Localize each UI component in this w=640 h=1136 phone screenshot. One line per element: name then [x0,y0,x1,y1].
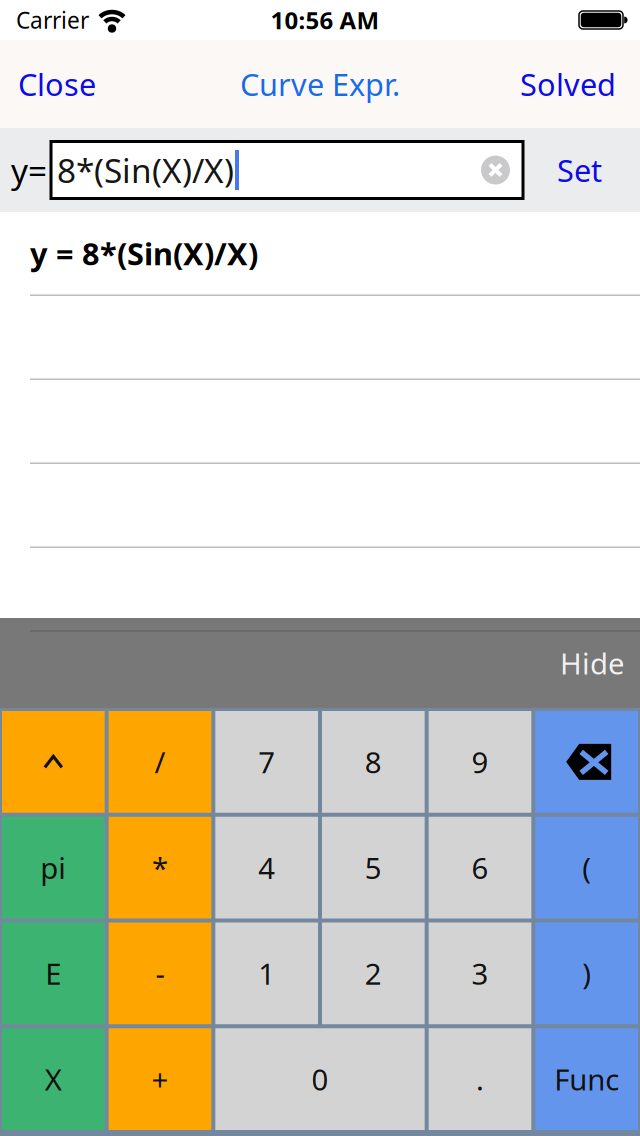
button[interactable]: Curve Expr. [240,64,400,104]
staticText: E [45,954,61,993]
staticText: Carrier [16,5,89,35]
button[interactable]: Solved [520,64,616,104]
button[interactable]: 8 [322,711,425,813]
staticText: 9 [471,742,488,781]
button[interactable]: 6 [429,817,531,919]
staticText: 4 [258,848,275,887]
staticText: Solved [520,64,616,104]
staticText: y= [11,148,47,192]
staticText: * [152,848,168,887]
button[interactable]: - [109,922,211,1024]
staticText: Set [557,150,602,190]
staticText: Curve Expr. [240,64,400,104]
button[interactable]: X [2,1028,105,1130]
staticText: 0 [311,1060,328,1099]
staticText: - [155,954,164,993]
staticText: 1 [258,954,275,993]
button[interactable]: E [2,922,105,1024]
staticText: 7 [258,742,275,781]
button[interactable]: 3 [429,922,531,1024]
staticText: 6 [471,848,488,887]
button[interactable]: 4 [215,817,318,919]
button[interactable] [2,711,105,813]
button[interactable]: Close [18,64,96,104]
button[interactable]: Set [523,128,636,212]
staticText: . [476,1060,484,1099]
staticText: ( [582,848,591,887]
staticText: / [154,742,165,781]
staticText: 8 [365,742,382,781]
button[interactable] [535,711,638,813]
button[interactable]: 8*(Sin(X)/X) [51,141,523,198]
button[interactable]: 7 [215,711,318,813]
button[interactable]: ) [535,922,638,1024]
staticText: Close [18,64,96,104]
button[interactable]: / [109,711,211,813]
staticText: Func [554,1060,619,1099]
button[interactable]: y = 8*(Sin(X)/X) [0,212,640,294]
staticText: 10:56 AM [270,4,379,36]
staticText: + [151,1060,168,1099]
staticText: pi [40,848,66,887]
button[interactable]: 2 [322,922,425,1024]
staticText: 2 [365,954,382,993]
button[interactable]: 9 [429,711,531,813]
button[interactable] [481,155,510,184]
staticText: Hide [560,643,625,682]
staticText: y = 8*(Sin(X)/X) [30,233,258,274]
button[interactable]: 1 [215,922,318,1024]
button[interactable]: * [109,817,211,919]
button[interactable]: pi [2,817,105,919]
button[interactable]: Func [535,1028,638,1130]
button[interactable]: . [429,1028,531,1130]
staticText: 5 [365,848,382,887]
staticText: 3 [471,954,488,993]
staticText: X [45,1060,62,1099]
staticText: 8*(Sin(X)/X) [57,148,234,192]
button[interactable]: + [109,1028,211,1130]
button[interactable]: 0 [215,1028,425,1130]
staticText: ) [582,954,591,993]
button[interactable]: 5 [322,817,425,919]
button[interactable]: ( [535,817,638,919]
button[interactable]: Hide [560,643,640,682]
